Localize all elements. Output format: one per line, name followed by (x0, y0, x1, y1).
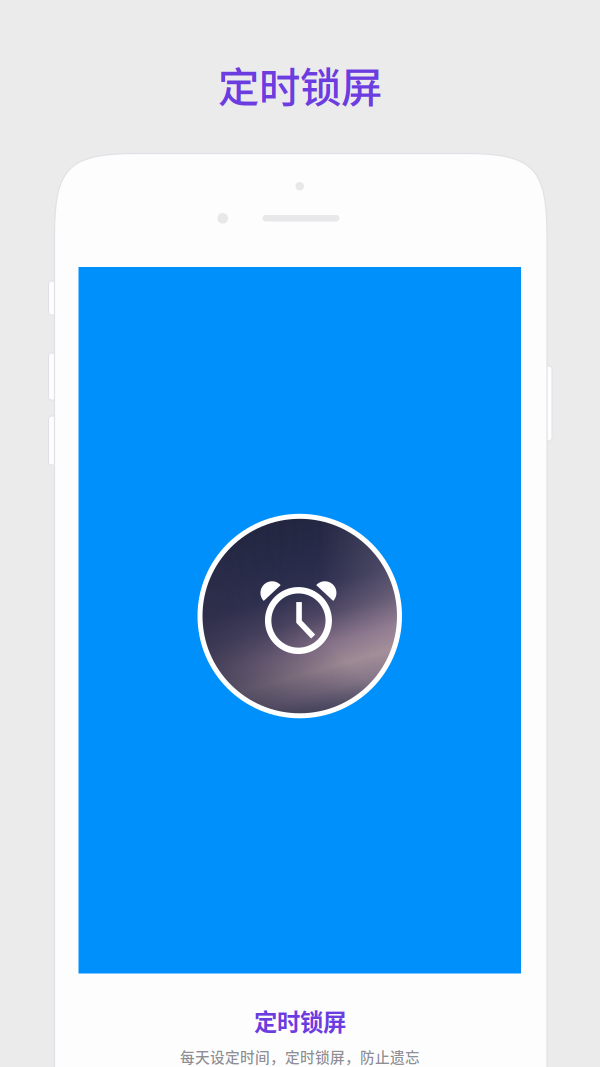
button[interactable]: 定时锁屏 (200, 520, 399, 720)
staticText: 每天设定时间，定时锁屏，防止遗忘 (180, 1046, 420, 1067)
staticText: 定时锁屏 (254, 1004, 346, 1038)
staticText: 定时锁屏 (218, 54, 382, 114)
